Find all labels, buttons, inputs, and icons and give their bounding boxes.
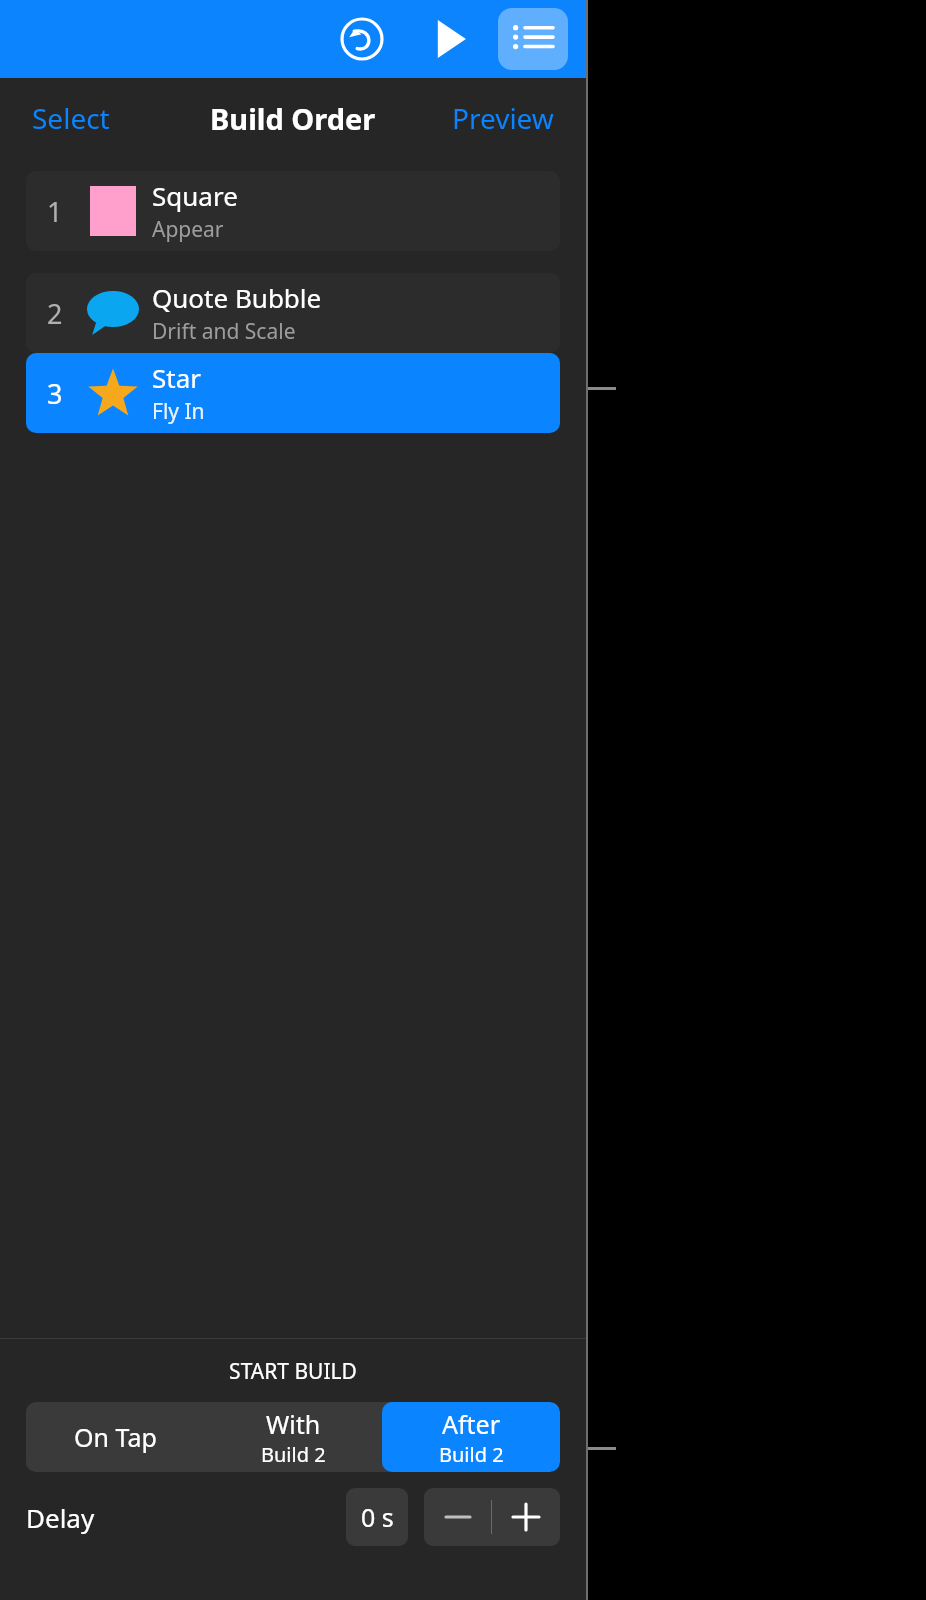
staticText: Build 2	[439, 1441, 504, 1468]
staticText: 2	[47, 295, 63, 332]
staticText: On Tap	[74, 1420, 157, 1454]
staticText: Preview	[452, 99, 554, 137]
button[interactable]: 2	[26, 273, 560, 353]
button[interactable]: 0 s	[346, 1488, 408, 1546]
staticText: Appear	[152, 215, 224, 244]
button[interactable]: Preview	[434, 89, 572, 147]
staticText: Drift and Scale	[152, 317, 296, 346]
button[interactable]: 1	[26, 171, 560, 251]
staticText: 1	[47, 193, 63, 230]
button[interactable]: Undo	[334, 11, 390, 67]
button[interactable]: 3	[26, 353, 560, 433]
staticText: Build 2	[261, 1441, 326, 1468]
staticText: Star	[152, 360, 201, 395]
button[interactable]: Play	[422, 11, 478, 67]
button[interactable]: On Tap	[26, 1402, 204, 1472]
staticText: After	[442, 1407, 501, 1441]
button[interactable]: With	[204, 1402, 382, 1472]
staticText: Square	[152, 178, 238, 213]
staticText: Delay	[26, 1500, 95, 1535]
button[interactable]: Decrease delay	[424, 1488, 491, 1546]
staticText: Select	[32, 99, 110, 137]
staticText: Quote Bubble	[152, 280, 322, 315]
staticText: Build Order	[210, 99, 376, 138]
staticText: 0 s	[361, 1500, 394, 1534]
button[interactable]: Build Order list	[498, 8, 568, 70]
button[interactable]: Increase delay	[492, 1488, 560, 1546]
staticText: Fly In	[152, 397, 205, 426]
button[interactable]: After	[382, 1402, 560, 1472]
staticText: 3	[47, 375, 63, 412]
staticText: START BUILD	[0, 1357, 586, 1386]
staticText: With	[266, 1407, 321, 1441]
button[interactable]: Select	[14, 89, 128, 147]
